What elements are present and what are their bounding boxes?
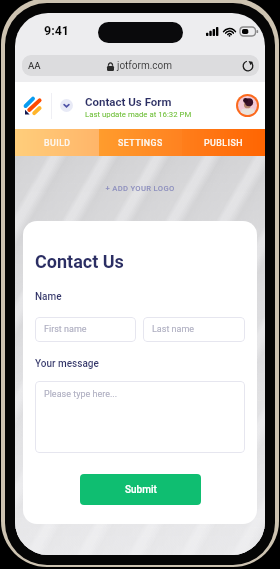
staticText: Last update made at 16:32 PM (85, 110, 192, 119)
staticText: Submit (125, 484, 157, 496)
staticText: Name (35, 291, 62, 303)
staticText: Last name (152, 324, 195, 335)
staticText: First name (44, 324, 87, 335)
button[interactable]: Last name (143, 317, 245, 342)
button[interactable]: Profile (238, 96, 257, 115)
staticText: Contact Us (35, 251, 124, 272)
button[interactable]: Expand form menu (60, 99, 73, 112)
button[interactable]: First name (35, 317, 136, 342)
staticText: Your message (35, 358, 99, 370)
button[interactable]: Submit (80, 474, 201, 505)
staticText: 9:41 (44, 23, 70, 38)
staticText: Please type here... (44, 389, 118, 400)
button[interactable]: Please type here... (35, 381, 245, 453)
staticText: SETTINGS (118, 138, 163, 148)
staticText: Contact Us Form (85, 95, 172, 108)
button[interactable]: SETTINGS (99, 129, 182, 156)
button[interactable]: BUILD (15, 129, 99, 156)
button[interactable]: Reload page (240, 58, 256, 74)
button[interactable]: PUBLISH (182, 129, 265, 156)
staticText: BUILD (44, 138, 71, 148)
staticText: + ADD YOUR LOGO (15, 184, 265, 193)
staticText: PUBLISH (204, 138, 243, 148)
staticText: jotform.com (117, 60, 173, 72)
button[interactable]: Text size options (22, 55, 52, 76)
staticText: AA (28, 60, 41, 71)
